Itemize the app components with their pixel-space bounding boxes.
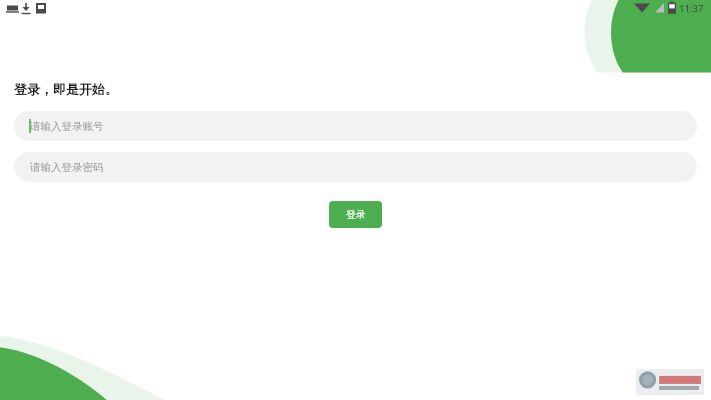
staticText: 11:37 <box>679 2 704 15</box>
button[interactable]: 登录 <box>329 201 382 228</box>
other: Watermark <box>636 369 704 395</box>
button[interactable]: 请输入登录账号 <box>14 111 697 141</box>
button[interactable]: 请输入登录密码 <box>14 152 697 182</box>
staticText: 请输入登录密码 <box>30 161 104 174</box>
staticText: 登录，即是开始。 <box>14 81 118 97</box>
staticText: 请输入登录账号 <box>30 120 104 133</box>
staticText: 登录 <box>346 208 366 221</box>
